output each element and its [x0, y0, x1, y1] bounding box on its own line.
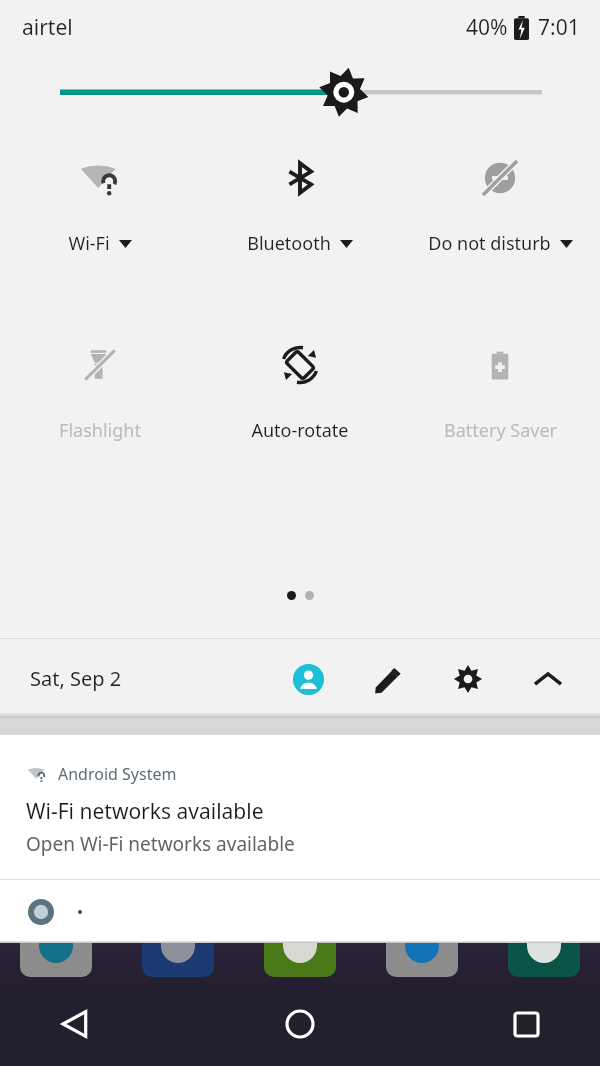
button[interactable]: App: [20, 943, 92, 977]
staticText: Android System: [58, 763, 177, 785]
staticText: Auto-rotate: [251, 418, 349, 443]
staticText: Flashlight: [59, 418, 141, 443]
staticText: Wi-Fi: [68, 231, 110, 256]
button[interactable]: App: [508, 943, 580, 977]
button[interactable]: App: [142, 943, 214, 977]
button[interactable]: Auto-rotate: [200, 338, 400, 447]
staticText: Do not disturb: [428, 231, 551, 256]
staticText: airtel: [22, 13, 73, 42]
button[interactable]: Brightness: [0, 55, 600, 115]
button[interactable]: Wi-Fi: [0, 151, 200, 260]
button[interactable]: App: [264, 943, 336, 977]
staticText: 7:01: [538, 13, 580, 42]
button[interactable]: App: [386, 943, 458, 977]
staticText: Battery Saver: [444, 418, 557, 443]
button[interactable]: Back: [40, 990, 108, 1058]
button[interactable]: Bluetooth: [200, 151, 400, 260]
button[interactable]: Battery Saver: [400, 338, 600, 447]
button[interactable]: Collapse: [524, 655, 572, 703]
staticText: Open Wi-Fi networks available: [26, 831, 295, 857]
staticText: Bluetooth: [247, 231, 331, 256]
button[interactable]: Do not disturb: [400, 151, 600, 260]
staticText: 40%: [466, 13, 508, 42]
button[interactable]: Android System: [0, 735, 600, 880]
staticText: Sat, Sep 2: [30, 665, 122, 692]
button[interactable]: Home: [266, 990, 334, 1058]
button[interactable]: Flashlight: [0, 338, 200, 447]
button[interactable]: Edit: [364, 655, 412, 703]
button[interactable]: User: [284, 655, 332, 703]
button[interactable]: Recents: [492, 990, 560, 1058]
staticText: Wi-Fi networks available: [26, 797, 264, 826]
button[interactable]: [0, 880, 600, 943]
button[interactable]: Settings: [444, 655, 492, 703]
